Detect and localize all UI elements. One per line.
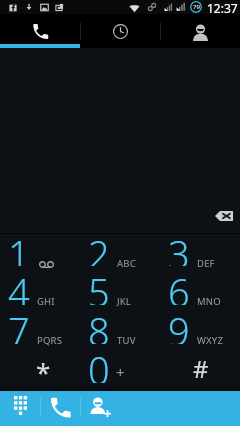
staticText: 1 [8, 228, 30, 266]
button[interactable]: # [160, 350, 240, 389]
staticText: # [193, 352, 209, 385]
staticText: GHI [37, 295, 55, 308]
staticText: ABC [117, 257, 136, 270]
staticText: 3 [168, 228, 190, 266]
button[interactable]: * [0, 350, 80, 389]
staticText: * [36, 354, 51, 389]
button[interactable]: 8 [80, 311, 160, 350]
button[interactable]: 2 [80, 234, 160, 272]
staticText: 4 [8, 266, 30, 305]
staticText: 2 [88, 228, 110, 266]
button[interactable]: Call history tab [80, 14, 160, 48]
staticText: + [116, 362, 125, 382]
button[interactable]: Contacts tab [160, 14, 240, 48]
staticText: PQRS [37, 334, 63, 347]
staticText: 9 [168, 305, 190, 344]
button[interactable]: 0 [80, 350, 160, 389]
button[interactable]: Dial pad tab [0, 14, 80, 48]
button[interactable]: Dial pad [0, 391, 40, 426]
button[interactable]: Backspace [209, 205, 239, 227]
staticText: 5 [88, 266, 110, 305]
staticText: 8 [88, 305, 110, 344]
button[interactable]: 4 [0, 272, 80, 311]
staticText: DEF [197, 257, 215, 270]
button[interactable]: Call [40, 391, 80, 426]
staticText: 79 [193, 3, 200, 11]
staticText: TUV [117, 334, 136, 347]
staticText: MNO [197, 295, 221, 308]
staticText: 12:37 [207, 0, 238, 14]
button[interactable]: 3 [160, 234, 240, 272]
staticText: 6 [168, 266, 190, 305]
staticText: 7 [8, 305, 30, 344]
staticText: 0 [88, 344, 110, 383]
staticText: JKL [117, 295, 132, 308]
button[interactable]: 5 [80, 272, 160, 311]
button[interactable]: Add contact [80, 391, 120, 426]
button[interactable]: 7 [0, 311, 80, 350]
staticText: WXYZ [197, 334, 224, 347]
button[interactable]: 1 [0, 234, 80, 272]
button[interactable]: 9 [160, 311, 240, 350]
button[interactable]: 6 [160, 272, 240, 311]
